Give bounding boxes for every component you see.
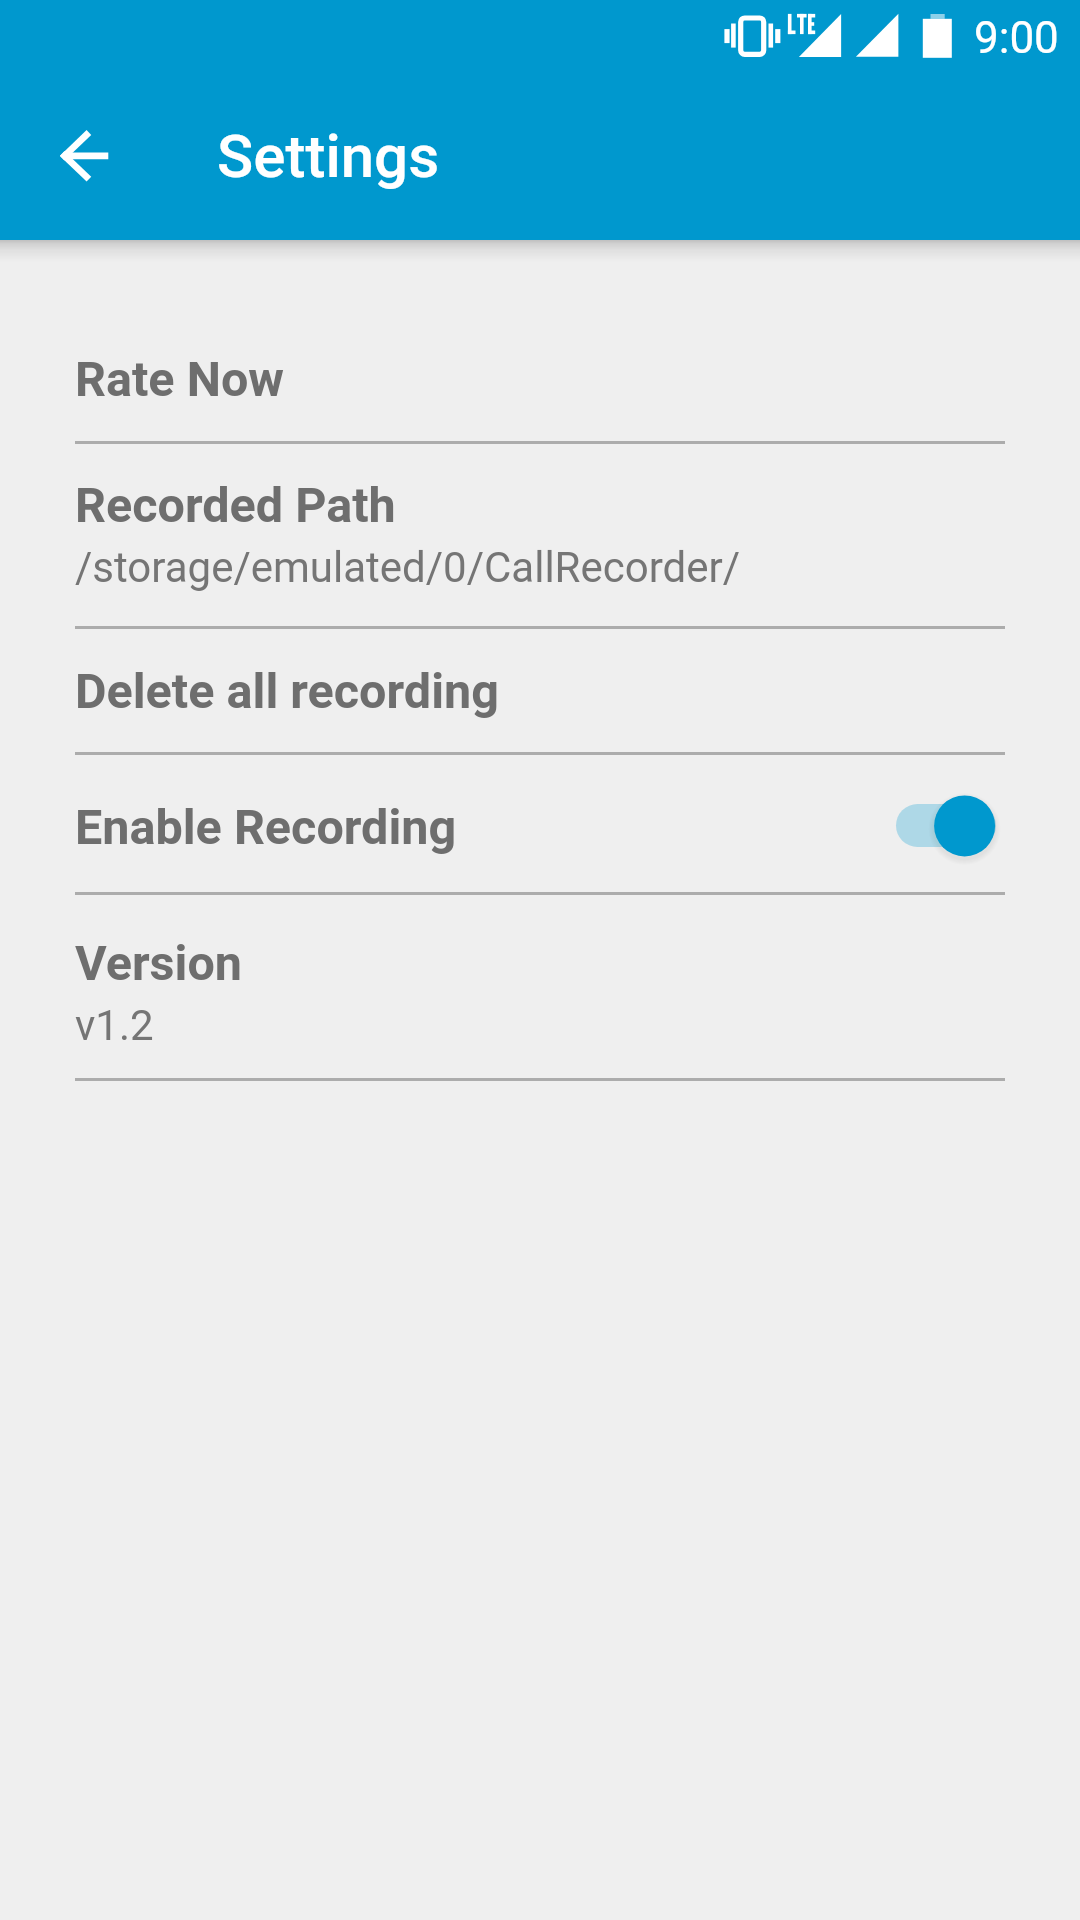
staticText: 9:00 — [974, 12, 1059, 64]
button[interactable]: Rate Now — [0, 241, 1080, 443]
button[interactable]: Recorded Path — [0, 444, 1080, 626]
staticText: Enable Recording — [75, 799, 457, 856]
button[interactable]: Back — [46, 121, 118, 193]
staticText: Version — [75, 935, 243, 992]
button[interactable]: Version — [0, 895, 1080, 1078]
button[interactable]: Enable Recording — [880, 784, 1015, 868]
staticText: v1.2 — [75, 1001, 154, 1050]
staticText: Settings — [217, 121, 440, 191]
staticText: Recorded Path — [75, 477, 396, 534]
staticText: /storage/emulated/0/CallRecorder/ — [75, 543, 741, 592]
staticText: Rate Now — [75, 351, 284, 408]
button[interactable]: Delete all recording — [0, 629, 1080, 752]
button[interactable]: Enable Recording — [0, 755, 1080, 892]
staticText: Delete all recording — [75, 663, 499, 720]
